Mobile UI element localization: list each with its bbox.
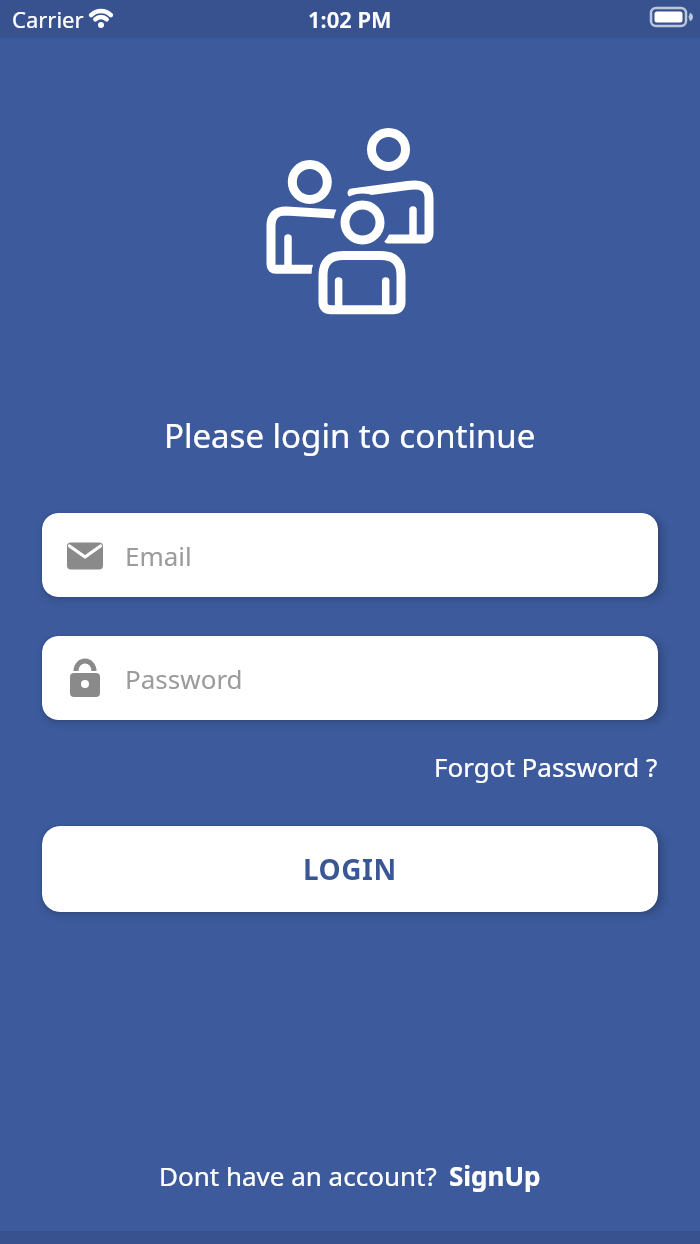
staticText: Email — [125, 538, 192, 573]
staticText: Please login to continue — [164, 413, 536, 458]
staticText: Dont have an account? — [159, 1158, 437, 1193]
staticText: Carrier — [12, 4, 84, 34]
button[interactable]: Email — [42, 513, 658, 597]
button[interactable]: SignUp — [449, 1158, 541, 1193]
staticText: Password — [125, 661, 243, 696]
button[interactable]: Forgot Password ? — [434, 749, 658, 784]
staticText: LOGIN — [303, 850, 397, 888]
staticText: 1:02 PM — [308, 4, 392, 34]
button[interactable]: LOGIN — [42, 826, 658, 912]
button[interactable]: Password — [42, 636, 658, 720]
